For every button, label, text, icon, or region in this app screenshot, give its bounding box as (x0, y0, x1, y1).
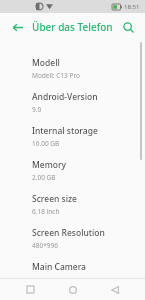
button[interactable]: Screen Resolution (0, 218, 145, 252)
button[interactable]: Internal storage (0, 116, 145, 150)
staticText: Android-Version (32, 91, 98, 103)
staticText: 480*996 (32, 241, 58, 250)
button[interactable]: Recent apps (18, 279, 42, 300)
staticText: Internal storage (32, 125, 98, 137)
staticText: 16.00 GB (32, 139, 60, 148)
staticText: Screen Resolution (32, 227, 105, 239)
staticText: Memory (32, 159, 67, 171)
button[interactable]: Back (6, 16, 28, 38)
staticText: Modell (32, 57, 60, 69)
button[interactable]: Home (61, 279, 85, 300)
button[interactable]: Back (103, 279, 127, 300)
staticText: 6.18 inch (32, 207, 60, 216)
button[interactable]: Main Camera (0, 252, 145, 278)
button[interactable]: Modell (0, 40, 145, 82)
staticText: Modell: C13 Pro (32, 71, 80, 80)
button[interactable]: Search (117, 16, 139, 38)
staticText: Über das Telefon (32, 20, 113, 34)
button[interactable]: Screen size (0, 184, 145, 218)
staticText: 9.0 (32, 105, 42, 114)
staticText: 18:51 (124, 3, 140, 11)
staticText: Screen size (32, 193, 77, 205)
staticText: 2.00 GB (32, 173, 56, 182)
button[interactable]: Memory (0, 150, 145, 184)
button[interactable]: Android-Version (0, 82, 145, 116)
staticText: Main Camera (32, 261, 86, 273)
